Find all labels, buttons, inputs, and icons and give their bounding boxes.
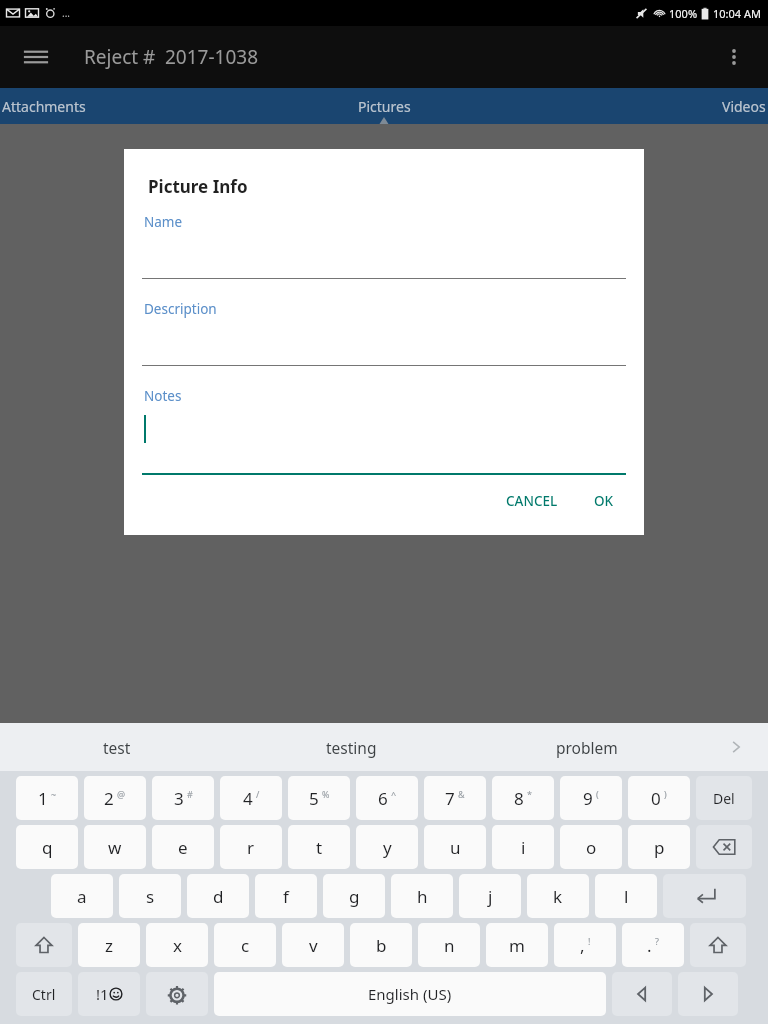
staticText: v: [309, 934, 318, 957]
button[interactable]: Settings: [146, 972, 208, 1016]
button[interactable]: h: [391, 874, 453, 918]
button[interactable]: Ctrl: [16, 972, 72, 1016]
staticText: 4: [243, 787, 253, 810]
button[interactable]: Pictures: [256, 88, 512, 124]
button[interactable]: Symbols and emoji: [78, 972, 140, 1016]
button[interactable]: 6: [356, 776, 418, 820]
staticText: 0: [651, 787, 661, 810]
button[interactable]: English (US): [214, 972, 606, 1016]
button[interactable]: u: [424, 825, 486, 869]
staticText: ...: [62, 6, 71, 20]
button[interactable]: k: [527, 874, 589, 918]
staticText: 8: [514, 787, 524, 810]
button[interactable]: x: [146, 923, 208, 967]
button[interactable]: Enter: [663, 874, 746, 918]
button[interactable]: .: [622, 923, 684, 967]
staticText: g: [349, 885, 360, 908]
button[interactable]: 8: [492, 776, 554, 820]
button[interactable]: l: [595, 874, 657, 918]
button[interactable]: Move cursor right: [678, 972, 738, 1016]
staticText: Pictures: [358, 97, 411, 116]
button[interactable]: testing: [234, 723, 469, 771]
button[interactable]: More options: [712, 35, 756, 79]
staticText: 9: [583, 787, 593, 810]
staticText: Attachments: [2, 97, 86, 116]
staticText: 1: [38, 787, 48, 810]
button[interactable]: 7: [424, 776, 486, 820]
button[interactable]: 9: [560, 776, 622, 820]
button[interactable]: 4: [220, 776, 282, 820]
button[interactable]: ,: [554, 923, 616, 967]
button[interactable]: test: [0, 723, 234, 771]
button[interactable]: y: [356, 825, 418, 869]
staticText: 5: [309, 787, 319, 810]
staticText: x: [173, 934, 182, 957]
button[interactable]: Description: [142, 300, 626, 387]
button[interactable]: t: [288, 825, 350, 869]
staticText: 2017-1038: [165, 44, 259, 70]
button[interactable]: r: [220, 825, 282, 869]
staticText: 2: [104, 787, 114, 810]
staticText: CANCEL: [506, 492, 558, 510]
button[interactable]: More suggestions: [704, 723, 768, 771]
button[interactable]: a: [51, 874, 113, 918]
staticText: s: [146, 885, 155, 908]
staticText: 10:04 AM: [713, 6, 761, 21]
staticText: test: [103, 737, 131, 758]
button[interactable]: s: [119, 874, 181, 918]
staticText: z: [105, 934, 113, 957]
staticText: h: [417, 885, 428, 908]
staticText: (: [596, 788, 599, 800]
button[interactable]: z: [78, 923, 140, 967]
button[interactable]: v: [282, 923, 344, 967]
staticText: problem: [556, 737, 618, 758]
button[interactable]: 2: [84, 776, 146, 820]
button[interactable]: f: [255, 874, 317, 918]
staticText: Videos: [722, 97, 766, 116]
button[interactable]: e: [152, 825, 214, 869]
button[interactable]: b: [350, 923, 412, 967]
staticText: @: [117, 788, 126, 800]
staticText: testing: [326, 737, 377, 758]
button[interactable]: 1: [16, 776, 78, 820]
staticText: /: [256, 788, 260, 800]
staticText: q: [42, 836, 53, 859]
button[interactable]: w: [84, 825, 146, 869]
button[interactable]: m: [486, 923, 548, 967]
button[interactable]: 3: [152, 776, 214, 820]
staticText: #: [187, 788, 193, 800]
button[interactable]: q: [16, 825, 78, 869]
button[interactable]: problem: [469, 723, 704, 771]
button[interactable]: Backspace: [696, 825, 752, 869]
button[interactable]: Navigation menu: [14, 35, 58, 79]
button[interactable]: Move cursor left: [612, 972, 672, 1016]
button[interactable]: OK: [584, 485, 624, 517]
button[interactable]: 0: [628, 776, 690, 820]
button[interactable]: Shift: [16, 923, 72, 967]
button[interactable]: j: [459, 874, 521, 918]
button[interactable]: c: [214, 923, 276, 967]
button[interactable]: p: [628, 825, 690, 869]
button[interactable]: n: [418, 923, 480, 967]
staticText: 7: [445, 787, 455, 810]
button[interactable]: Notes: [142, 387, 626, 475]
staticText: a: [77, 885, 87, 908]
button[interactable]: i: [492, 825, 554, 869]
staticText: n: [444, 934, 455, 957]
button[interactable]: Shift: [690, 923, 746, 967]
button[interactable]: CANCEL: [496, 485, 568, 517]
button[interactable]: Videos: [512, 88, 768, 124]
staticText: t: [316, 836, 323, 859]
staticText: u: [450, 836, 461, 859]
staticText: l: [624, 885, 629, 908]
button[interactable]: d: [187, 874, 249, 918]
staticText: Reject #: [84, 44, 156, 70]
staticText: %: [322, 788, 330, 800]
button[interactable]: Attachments: [0, 88, 256, 124]
staticText: ): [664, 788, 667, 800]
button[interactable]: g: [323, 874, 385, 918]
button[interactable]: 5: [288, 776, 350, 820]
button[interactable]: Name: [142, 213, 626, 300]
button[interactable]: o: [560, 825, 622, 869]
button[interactable]: Del: [696, 776, 752, 820]
